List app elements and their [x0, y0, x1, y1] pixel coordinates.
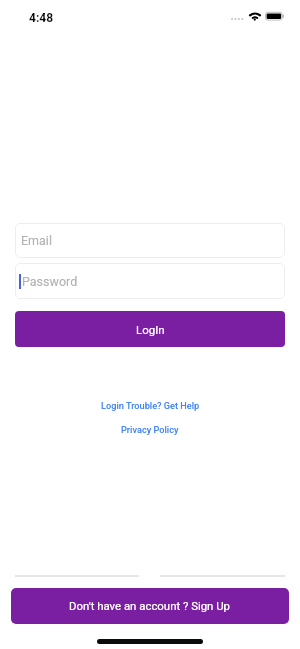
button[interactable]: Login Trouble? Get Help	[0, 397, 300, 413]
other: Wi-Fi	[247, 11, 263, 22]
staticText: Password	[22, 274, 78, 289]
staticText: 4:48	[29, 11, 54, 25]
button[interactable]: LogIn	[15, 311, 285, 347]
button[interactable]: Don't have an account ? Sign Up	[11, 588, 289, 624]
staticText: Privacy Policy	[121, 424, 179, 435]
staticText: LogIn	[136, 323, 165, 336]
other: Battery full	[265, 11, 285, 22]
staticText: Login Trouble? Get Help	[101, 400, 200, 411]
staticText: Don't have an account ? Sign Up	[69, 599, 231, 612]
button[interactable]: Privacy Policy	[0, 421, 300, 437]
staticText: Email	[21, 233, 52, 248]
button[interactable]: Password	[15, 263, 285, 299]
other: Cellular signal	[231, 17, 245, 21]
button[interactable]: Email	[15, 223, 285, 258]
